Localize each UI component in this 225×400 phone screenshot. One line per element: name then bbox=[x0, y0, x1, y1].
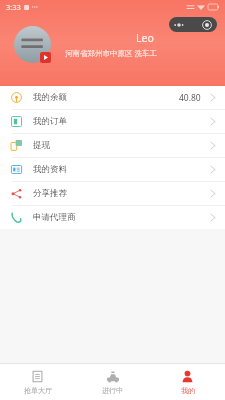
button[interactable]: Screen recorder controls bbox=[169, 17, 217, 32]
button[interactable]: 我的资料 bbox=[0, 158, 225, 181]
staticText: 3:33 bbox=[6, 2, 21, 12]
button[interactable]: 申请代理商 bbox=[0, 206, 225, 229]
staticText: 我的订单 bbox=[33, 116, 67, 127]
button[interactable]: 我的余额 bbox=[0, 86, 225, 109]
staticText: 40.80 bbox=[179, 92, 201, 104]
staticText: 申请代理商 bbox=[33, 212, 76, 223]
staticText: Leo bbox=[65, 31, 225, 45]
staticText: 分享推荐 bbox=[33, 188, 67, 199]
staticText: 我的资料 bbox=[33, 164, 67, 175]
button[interactable]: 分享推荐 bbox=[0, 182, 225, 205]
staticText: 我的余额 bbox=[33, 92, 67, 103]
button[interactable]: 我的订单 bbox=[0, 110, 225, 133]
button[interactable]: 抢单大厅 bbox=[0, 364, 75, 400]
button[interactable]: 进行中 bbox=[75, 364, 150, 400]
staticText: 我的 bbox=[181, 386, 195, 395]
staticText: 河南省郑州市中原区 洗车工 bbox=[65, 48, 157, 58]
button[interactable]: 我的 bbox=[150, 364, 225, 400]
button[interactable]: 提现 bbox=[0, 134, 225, 157]
staticText: 抢单大厅 bbox=[24, 386, 52, 395]
staticText: 进行中 bbox=[102, 386, 123, 395]
staticText: 提现 bbox=[33, 140, 50, 151]
button[interactable]: Leo bbox=[14, 26, 225, 63]
